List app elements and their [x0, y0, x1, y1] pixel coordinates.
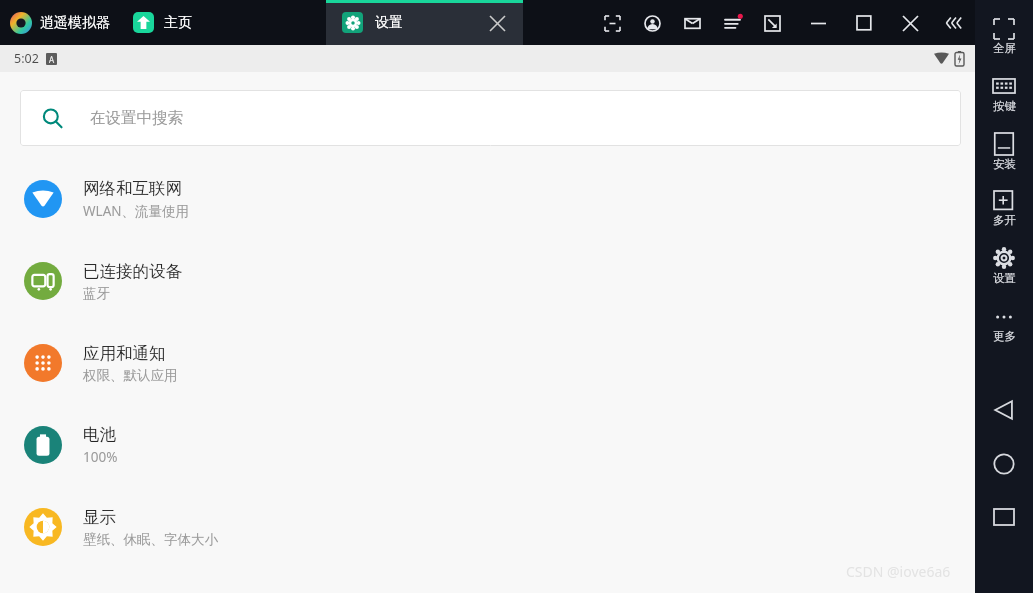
- staticText: WLAN、流量使用: [83, 202, 190, 220]
- button[interactable]: 设置: [326, 0, 523, 45]
- button[interactable]: 应用和通知: [0, 322, 975, 404]
- button[interactable]: Close tab: [485, 11, 509, 35]
- staticText: 蓝牙: [83, 285, 110, 302]
- button[interactable]: Fullscreen: [975, 14, 1033, 60]
- staticText: 已连接的设备: [83, 261, 182, 282]
- button[interactable]: Screenshot: [599, 10, 625, 36]
- staticText: 安装: [993, 157, 1016, 171]
- button[interactable]: 显示: [0, 486, 975, 568]
- staticText: 电池: [83, 424, 116, 445]
- button[interactable]: Recents: [975, 502, 1033, 532]
- staticText: 100%: [83, 448, 118, 466]
- button[interactable]: More: [975, 302, 1033, 348]
- staticText: 逍遥模拟器: [40, 14, 110, 32]
- button[interactable]: Home: [975, 448, 1033, 480]
- staticText: 网络和互联网: [83, 178, 182, 199]
- button[interactable]: 在设置中搜索: [20, 90, 961, 146]
- staticText: 应用和通知: [83, 343, 166, 364]
- staticText: 全屏: [993, 41, 1016, 55]
- staticText: CSDN @iove6a6: [846, 562, 951, 581]
- button[interactable]: Back: [975, 394, 1033, 426]
- staticText: 按键: [993, 99, 1016, 113]
- staticText: 设置: [375, 14, 403, 32]
- staticText: 在设置中搜索: [90, 108, 183, 128]
- staticText: 多开: [993, 213, 1016, 227]
- staticText: 壁纸、休眠、字体大小: [83, 531, 218, 548]
- staticText: 主页: [164, 14, 192, 32]
- button[interactable]: Account: [639, 10, 665, 36]
- button[interactable]: Maximize: [851, 10, 877, 36]
- button[interactable]: Close: [897, 10, 923, 36]
- staticText: 5:02: [14, 50, 39, 67]
- button[interactable]: Key mapping: [975, 70, 1033, 118]
- staticText: 设置: [993, 271, 1016, 285]
- button[interactable]: Install APK: [975, 128, 1033, 176]
- button[interactable]: Minimize: [805, 10, 831, 36]
- button[interactable]: Menu: [719, 10, 745, 36]
- button[interactable]: Collapse toolbar: [939, 8, 969, 38]
- button[interactable]: Mail: [679, 10, 705, 36]
- button[interactable]: Shrink: [759, 10, 785, 36]
- button[interactable]: 电池: [0, 404, 975, 486]
- button[interactable]: 主页: [133, 0, 313, 45]
- staticText: A: [49, 54, 55, 65]
- button[interactable]: Multi instance: [975, 186, 1033, 232]
- button[interactable]: 网络和互联网: [0, 158, 975, 240]
- staticText: 更多: [993, 329, 1016, 343]
- staticText: 权限、默认应用: [83, 367, 178, 384]
- staticText: 显示: [83, 507, 116, 528]
- button[interactable]: 已连接的设备: [0, 240, 975, 322]
- button[interactable]: Settings: [975, 242, 1033, 290]
